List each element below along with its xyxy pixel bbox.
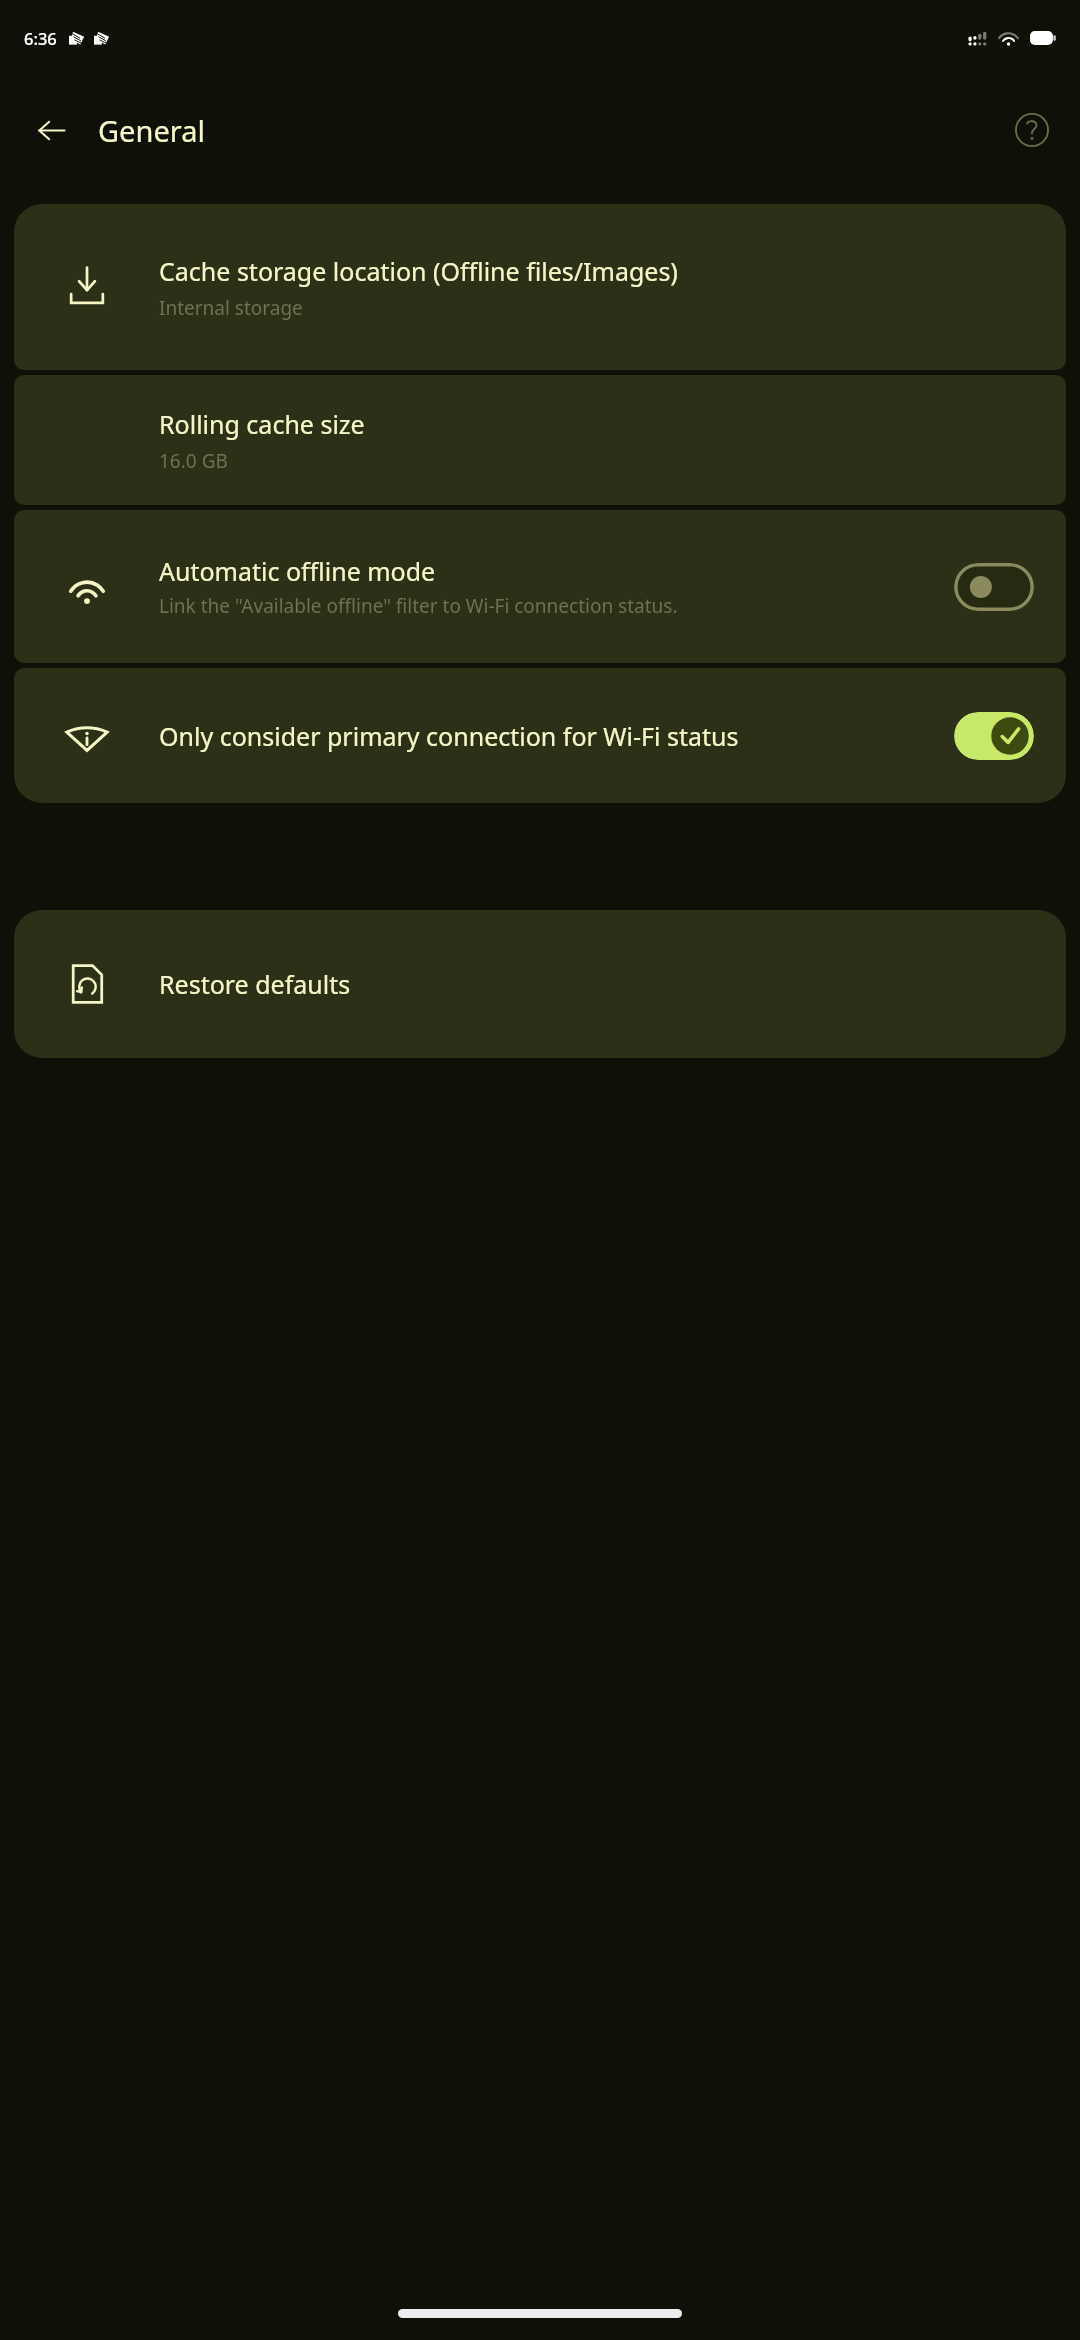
staticText: Internal storage (159, 295, 303, 321)
button[interactable]: Restore defaults (14, 910, 1066, 1058)
button[interactable]: Back (24, 103, 78, 157)
button[interactable]: Cache storage location (Offline files/Im… (14, 204, 1066, 370)
button[interactable]: Automatic offline mode (14, 510, 1066, 663)
button[interactable]: Toggle on (954, 712, 1034, 760)
staticText: Automatic offline mode (159, 554, 436, 588)
button[interactable]: Only consider primary connection for Wi-… (14, 668, 1066, 803)
staticText: Cache storage location (Offline files/Im… (159, 254, 678, 288)
staticText: Link the "Available offline" filter to W… (159, 593, 678, 619)
staticText: Rolling cache size (159, 407, 365, 441)
staticText: 6:36 (24, 27, 57, 49)
staticText: General (98, 111, 205, 150)
staticText: 16.0 GB (159, 448, 228, 474)
staticText: Restore defaults (159, 967, 351, 1001)
staticText: Only consider primary connection for Wi-… (159, 719, 739, 753)
button[interactable]: Rolling cache size (14, 375, 1066, 505)
button[interactable]: Toggle off (954, 563, 1034, 611)
button[interactable]: Help (1006, 104, 1058, 156)
